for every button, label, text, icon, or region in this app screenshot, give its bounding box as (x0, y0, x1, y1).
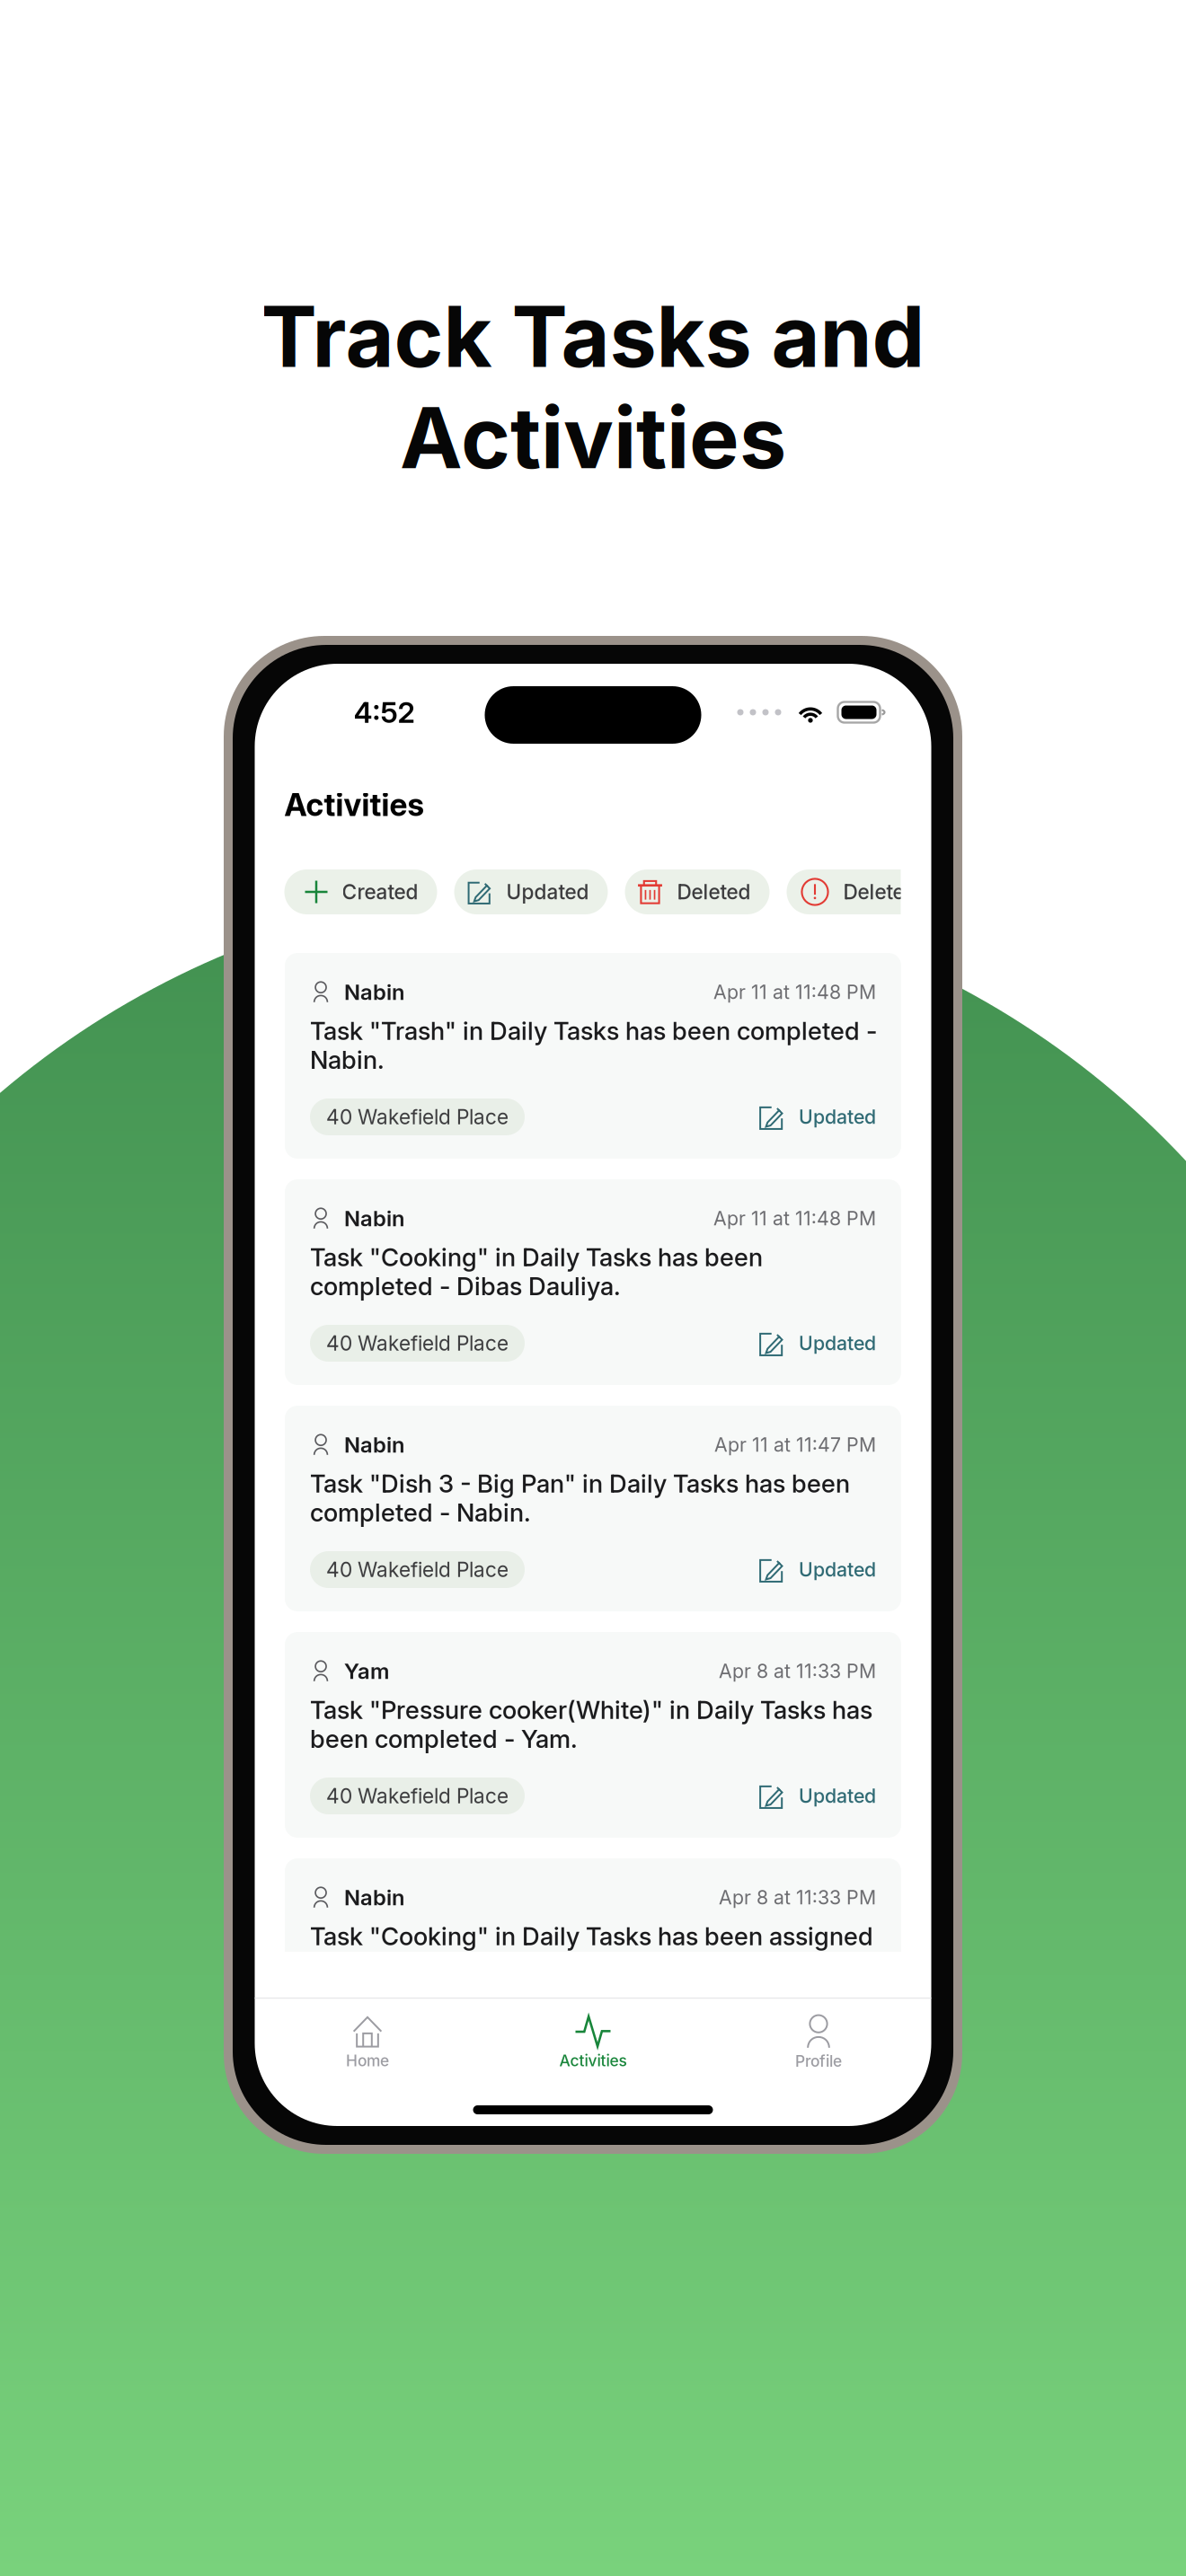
staticText: Task "Cooking" in Daily Tasks has been c… (310, 1242, 763, 1301)
staticText: Updated (506, 880, 589, 904)
button[interactable]: Profile (706, 2015, 931, 2071)
button[interactable]: Nabin (285, 953, 901, 1159)
staticText: Apr 11 at 11:48 PM (713, 1207, 876, 1230)
button[interactable]: 40 Wakefield Place (310, 1098, 525, 1135)
button[interactable]: Home (255, 2015, 480, 2070)
staticText: Nabin (344, 979, 404, 1005)
staticText: Home (346, 2051, 389, 2070)
staticText: Nabin (344, 1432, 404, 1458)
staticText: Apr 8 at 11:33 PM (719, 1886, 876, 1909)
staticText: Updated (799, 1784, 876, 1808)
staticText: Deleted (677, 880, 751, 904)
staticText: Yam (344, 1658, 389, 1684)
button[interactable]: Created (284, 869, 437, 914)
button[interactable]: Updated (759, 1104, 876, 1129)
staticText: Apr 8 at 11:33 PM (719, 1659, 876, 1683)
staticText: Nabin (344, 1205, 404, 1231)
staticText: Task "Dish 3 - Big Pan" in Daily Tasks h… (310, 1469, 850, 1527)
staticText: Updated (799, 1558, 876, 1581)
button[interactable]: Updated (759, 1557, 876, 1582)
button[interactable]: 40 Wakefield Place (310, 1778, 525, 1814)
staticText: Task "Pressure cooker(White)" in Daily T… (310, 1695, 872, 1754)
button[interactable]: 40 Wakefield Place (310, 1551, 525, 1588)
staticText: Apr 11 at 11:47 PM (714, 1433, 876, 1456)
staticText: Apr 11 at 11:48 PM (713, 980, 876, 1004)
staticText: 40 Wakefield Place (326, 1784, 509, 1808)
staticText: 40 Wakefield Place (326, 1557, 509, 1582)
staticText: Activities (559, 2051, 627, 2070)
button[interactable]: Updated (759, 1783, 876, 1808)
button[interactable]: Activities (480, 2015, 706, 2070)
staticText: Track Tasks and (261, 286, 925, 387)
staticText: Task "Trash" in Daily Tasks has been com… (310, 1016, 877, 1075)
staticText: Activities (284, 786, 424, 824)
button[interactable]: Updated (759, 1331, 876, 1356)
button[interactable]: Nabin (285, 1858, 901, 2002)
button[interactable]: Nabin (285, 1406, 901, 1611)
staticText: 40 Wakefield Place (326, 1105, 509, 1129)
staticText: 4:52 (354, 695, 415, 730)
staticText: Created (342, 880, 418, 904)
button[interactable]: 40 Wakefield Place (310, 1325, 525, 1362)
staticText: Profile (795, 2052, 842, 2071)
staticText: Task "Cooking" in Daily Tasks has been a… (310, 1921, 873, 1951)
staticText: Updated (799, 1332, 876, 1355)
staticText: 40 Wakefield Place (326, 1331, 509, 1356)
button[interactable]: Nabin (285, 1179, 901, 1385)
button[interactable]: Yam (285, 1632, 901, 1838)
staticText: Delete All (843, 880, 935, 904)
button[interactable]: Updated (454, 869, 608, 914)
staticText: Updated (799, 1105, 876, 1128)
button[interactable]: Delete All (787, 869, 954, 914)
staticText: Nabin (344, 1884, 404, 1910)
button[interactable]: Deleted (625, 869, 770, 914)
staticText: Activities (400, 387, 786, 488)
